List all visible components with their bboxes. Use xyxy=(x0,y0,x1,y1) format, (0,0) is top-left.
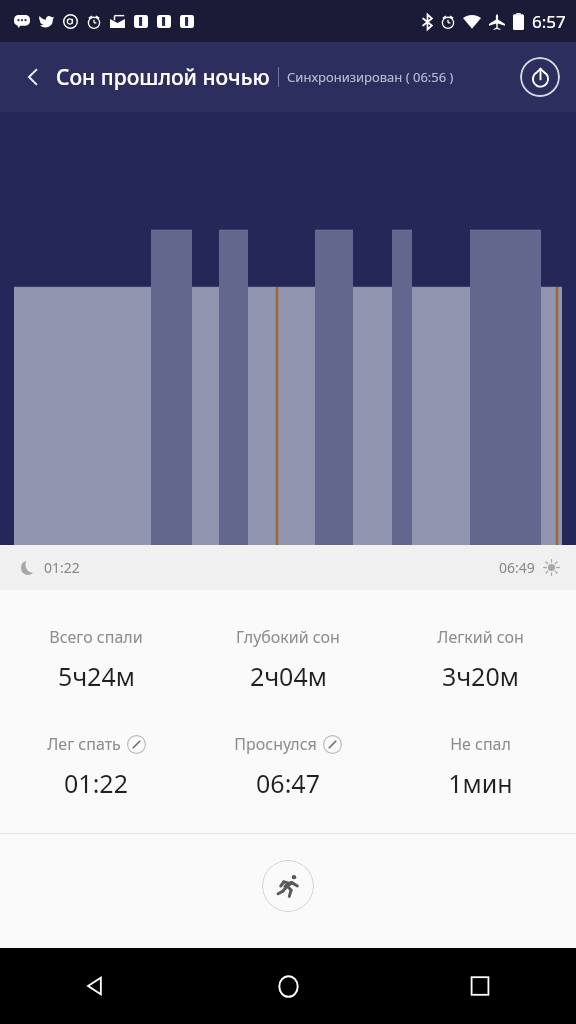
staticText: 3ч20м xyxy=(442,659,519,693)
staticText: 06:47 xyxy=(256,766,320,800)
staticText: Сон прошлой ночью xyxy=(56,63,270,92)
staticText: 01:22 xyxy=(44,558,80,577)
button[interactable]: Главный экран xyxy=(192,948,384,1024)
staticText: 1мин xyxy=(448,766,513,800)
staticText: 5ч24м xyxy=(58,659,135,693)
staticText: 6:57 xyxy=(532,10,566,33)
staticText: 01:22 xyxy=(64,766,128,800)
button[interactable]: Назад xyxy=(16,60,50,94)
staticText: Не спал xyxy=(450,733,511,755)
staticText: Лег спать xyxy=(47,733,121,755)
staticText: 06:49 xyxy=(499,558,535,577)
button[interactable]: Проснулся xyxy=(192,733,384,800)
staticText: Синхронизирован ( 06:56 ) xyxy=(287,68,454,86)
staticText: Легкий сон xyxy=(437,626,524,648)
staticText: Проснулся xyxy=(234,733,317,755)
staticText: Всего спали xyxy=(49,626,143,648)
staticText: Глубокий сон xyxy=(236,626,340,648)
button[interactable]: Синхронизировать xyxy=(520,57,560,97)
button[interactable]: Обзор xyxy=(384,948,576,1024)
button[interactable]: Активность xyxy=(262,860,314,912)
staticText: 2ч04м xyxy=(250,659,327,693)
button[interactable]: Назад xyxy=(0,948,192,1024)
button[interactable]: Лег спать xyxy=(0,733,192,800)
